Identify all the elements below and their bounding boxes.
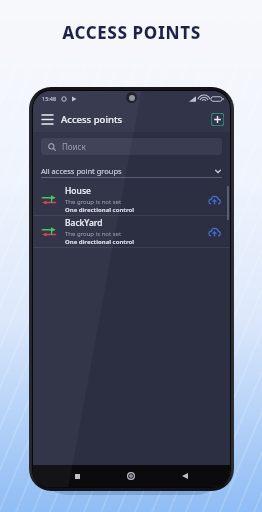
button[interactable]: Home [122, 467, 140, 485]
button[interactable]: BackYard [33, 216, 230, 247]
staticText: All access point groups [41, 166, 214, 176]
button[interactable]: Back [176, 467, 194, 485]
button[interactable]: Sync to cloud [204, 190, 224, 210]
staticText: House [65, 185, 91, 197]
button[interactable]: All access point groups [41, 164, 222, 178]
button[interactable]: Recent apps [68, 467, 86, 485]
button[interactable]: Add access point [211, 113, 224, 126]
button[interactable]: Sync to cloud [204, 222, 224, 242]
staticText: The group is not set [65, 198, 122, 206]
staticText: BackYard [65, 217, 103, 229]
button[interactable]: House [33, 184, 230, 215]
staticText: ACCESS POINTS [62, 21, 201, 44]
button[interactable]: Open navigation menu [38, 110, 56, 128]
staticText: One directional control [65, 238, 135, 246]
staticText: 15:48 [42, 95, 57, 102]
staticText: The group is not set [65, 230, 122, 238]
button[interactable]: Поиск [41, 138, 222, 155]
staticText: Поиск [62, 141, 86, 152]
staticText: One directional control [65, 206, 135, 214]
staticText: Access points [61, 113, 123, 126]
